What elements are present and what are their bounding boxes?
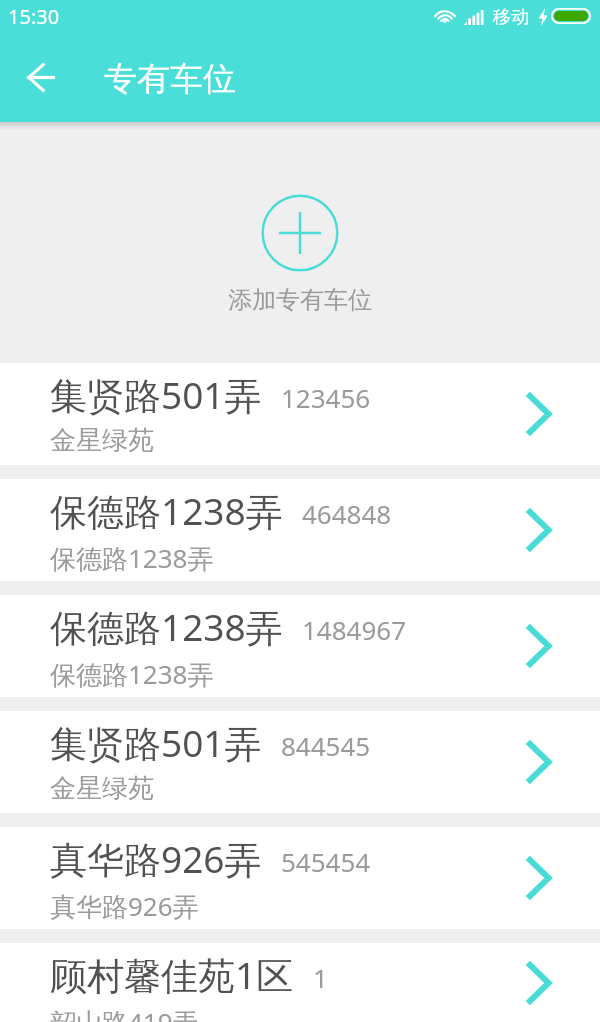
staticText: 464848	[302, 496, 392, 531]
button[interactable]: 保德路1238弄	[0, 479, 600, 581]
button[interactable]: 查看详情	[513, 732, 563, 792]
staticText: 1484967	[302, 612, 407, 647]
staticText: 真华路926弄	[50, 833, 262, 884]
staticText: 集贤路501弄	[50, 369, 262, 420]
button[interactable]: 顾村馨佳苑1区	[0, 943, 600, 1022]
staticText: 韶山路419弄	[50, 1004, 199, 1022]
button[interactable]: 集贤路501弄	[0, 711, 600, 813]
staticText: 添加专有车位	[228, 285, 372, 315]
button[interactable]: 真华路926弄	[0, 827, 600, 929]
button[interactable]: 集贤路501弄	[0, 363, 600, 465]
button[interactable]: Back	[6, 44, 74, 110]
staticText: 真华路926弄	[50, 888, 199, 924]
staticText: 123456	[281, 380, 371, 415]
staticText: 545454	[281, 844, 371, 879]
staticText: 保德路1238弄	[50, 601, 283, 652]
staticText: 金星绿苑	[50, 772, 154, 805]
staticText: 移动	[493, 6, 529, 29]
button[interactable]: 查看详情	[513, 384, 563, 444]
staticText: 顾村馨佳苑1区	[50, 949, 294, 1000]
staticText: 1	[313, 960, 328, 995]
button[interactable]: 保德路1238弄	[0, 595, 600, 697]
staticText: 保德路1238弄	[50, 656, 214, 692]
button[interactable]: 查看详情	[513, 953, 563, 1013]
button[interactable]: 查看详情	[513, 616, 563, 676]
staticText: 保德路1238弄	[50, 485, 283, 536]
button[interactable]: 查看详情	[513, 500, 563, 560]
button[interactable]: 添加专有车位	[0, 122, 600, 363]
staticText: 集贤路501弄	[50, 717, 262, 768]
staticText: 保德路1238弄	[50, 540, 214, 576]
button[interactable]: 查看详情	[513, 848, 563, 908]
staticText: 专有车位	[104, 58, 236, 100]
staticText: 金星绿苑	[50, 424, 154, 457]
staticText: 844545	[281, 728, 371, 763]
staticText: 15:30	[8, 3, 60, 30]
